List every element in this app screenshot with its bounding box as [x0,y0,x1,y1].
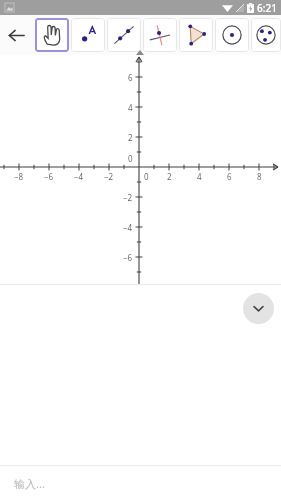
staticText: 2 [167,171,172,182]
button[interactable]: Back [0,19,33,52]
button[interactable]: Point tool [71,18,105,52]
button[interactable]: 输入... [0,466,281,500]
staticText: −2 [104,171,114,182]
staticText: 输入... [14,476,45,491]
button[interactable]: Circle with center tool [215,18,249,52]
staticText: −2 [123,192,133,203]
button[interactable]: Move tool [35,18,69,52]
button[interactable]: Perpendicular line tool [143,18,177,52]
staticText: 6 [128,72,133,83]
staticText: −4 [123,222,133,233]
staticText: −6 [44,171,54,182]
staticText: 4 [197,171,202,182]
button[interactable]: Expand algebra view [243,293,274,324]
button[interactable]: Circle through three points tool [251,18,281,52]
staticText: −6 [123,252,133,263]
staticText: 6 [227,171,232,182]
button[interactable]: Polygon tool [179,18,213,52]
staticText: 4 [128,102,133,113]
staticText: −4 [74,171,84,182]
staticText: −8 [14,171,24,182]
staticText: 0 [128,153,133,164]
button[interactable]: Line tool [107,18,141,52]
staticText: 2 [128,132,133,143]
staticText: 6:21 [257,1,277,15]
staticText: 0 [144,171,149,182]
staticText: 8 [257,171,262,182]
